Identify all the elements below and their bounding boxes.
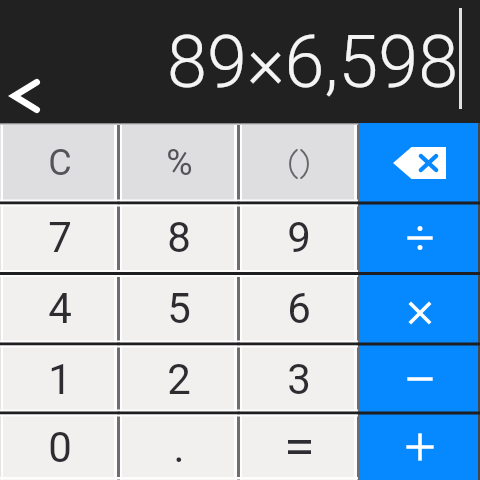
staticText: 8 [167,213,191,262]
staticText: 2 [167,355,191,404]
staticText: 6 [287,284,311,333]
button[interactable]: Equals [239,414,359,480]
staticText: . [173,423,185,472]
staticText: 7 [48,213,72,262]
button[interactable]: C [0,123,119,202]
button[interactable]: 9 [239,202,359,273]
button[interactable]: 6 [239,273,359,344]
button[interactable]: Subtract [359,344,480,414]
staticText: C [48,142,72,184]
staticText: 89×6,598 [167,20,459,104]
button[interactable]: Add [359,414,480,480]
staticText: 0 [48,423,72,472]
button[interactable]: 0 [0,414,119,480]
button[interactable]: 8 [119,202,239,273]
button[interactable]: . [119,414,239,480]
staticText: 9 [287,213,311,262]
button[interactable]: % [119,123,239,202]
button[interactable]: 4 [0,273,119,344]
button[interactable]: 3 [239,344,359,414]
button[interactable]: Backspace [359,123,480,202]
staticText: 3 [287,355,311,404]
button[interactable]: Back [0,67,58,123]
button[interactable]: 7 [0,202,119,273]
button[interactable]: Multiply [359,273,480,344]
staticText: 5 [167,284,191,333]
staticText: 4 [48,284,72,333]
staticText: 1 [48,355,72,404]
button[interactable]: Divide [359,202,480,273]
button[interactable]: Parentheses [239,123,359,202]
staticText: % [166,142,193,184]
button[interactable]: 2 [119,344,239,414]
button[interactable]: 5 [119,273,239,344]
button[interactable]: 1 [0,344,119,414]
